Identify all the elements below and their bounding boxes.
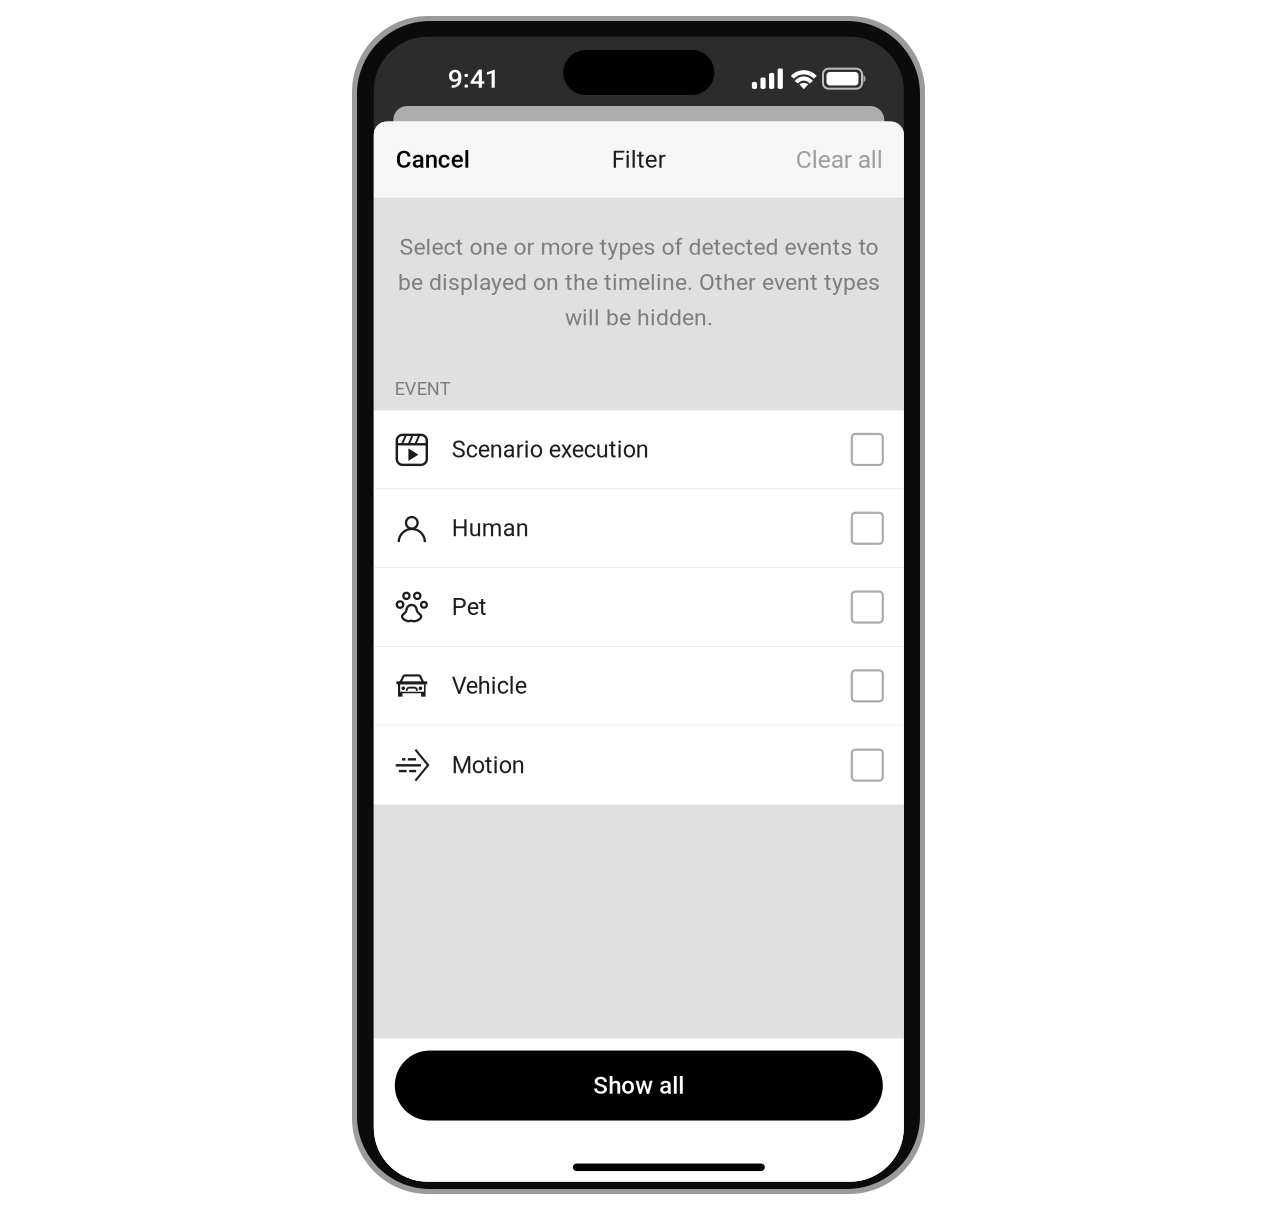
staticText: 9:41: [448, 63, 500, 94]
button[interactable]: Show all: [395, 1050, 883, 1120]
button[interactable]: Motion: [374, 726, 904, 805]
button[interactable]: Human: [374, 489, 904, 568]
staticText: Scenario execution: [452, 436, 649, 463]
button[interactable]: Clear all: [773, 122, 904, 198]
button[interactable]: Vehicle: [374, 647, 904, 726]
button[interactable]: Pet: [374, 568, 904, 647]
staticText: Clear all: [796, 145, 883, 174]
staticText: Filter: [612, 145, 666, 174]
staticText: Cancel: [396, 145, 470, 174]
staticText: Show all: [593, 1071, 684, 1100]
staticText: EVENT: [395, 378, 451, 399]
staticText: Vehicle: [452, 672, 527, 700]
staticText: Motion: [452, 751, 525, 779]
staticText: Pet: [452, 593, 487, 621]
staticText: Human: [452, 514, 529, 542]
staticText: Select one or more types of detected eve…: [398, 234, 880, 331]
button[interactable]: Cancel: [374, 122, 506, 198]
button[interactable]: Scenario execution: [374, 411, 904, 489]
